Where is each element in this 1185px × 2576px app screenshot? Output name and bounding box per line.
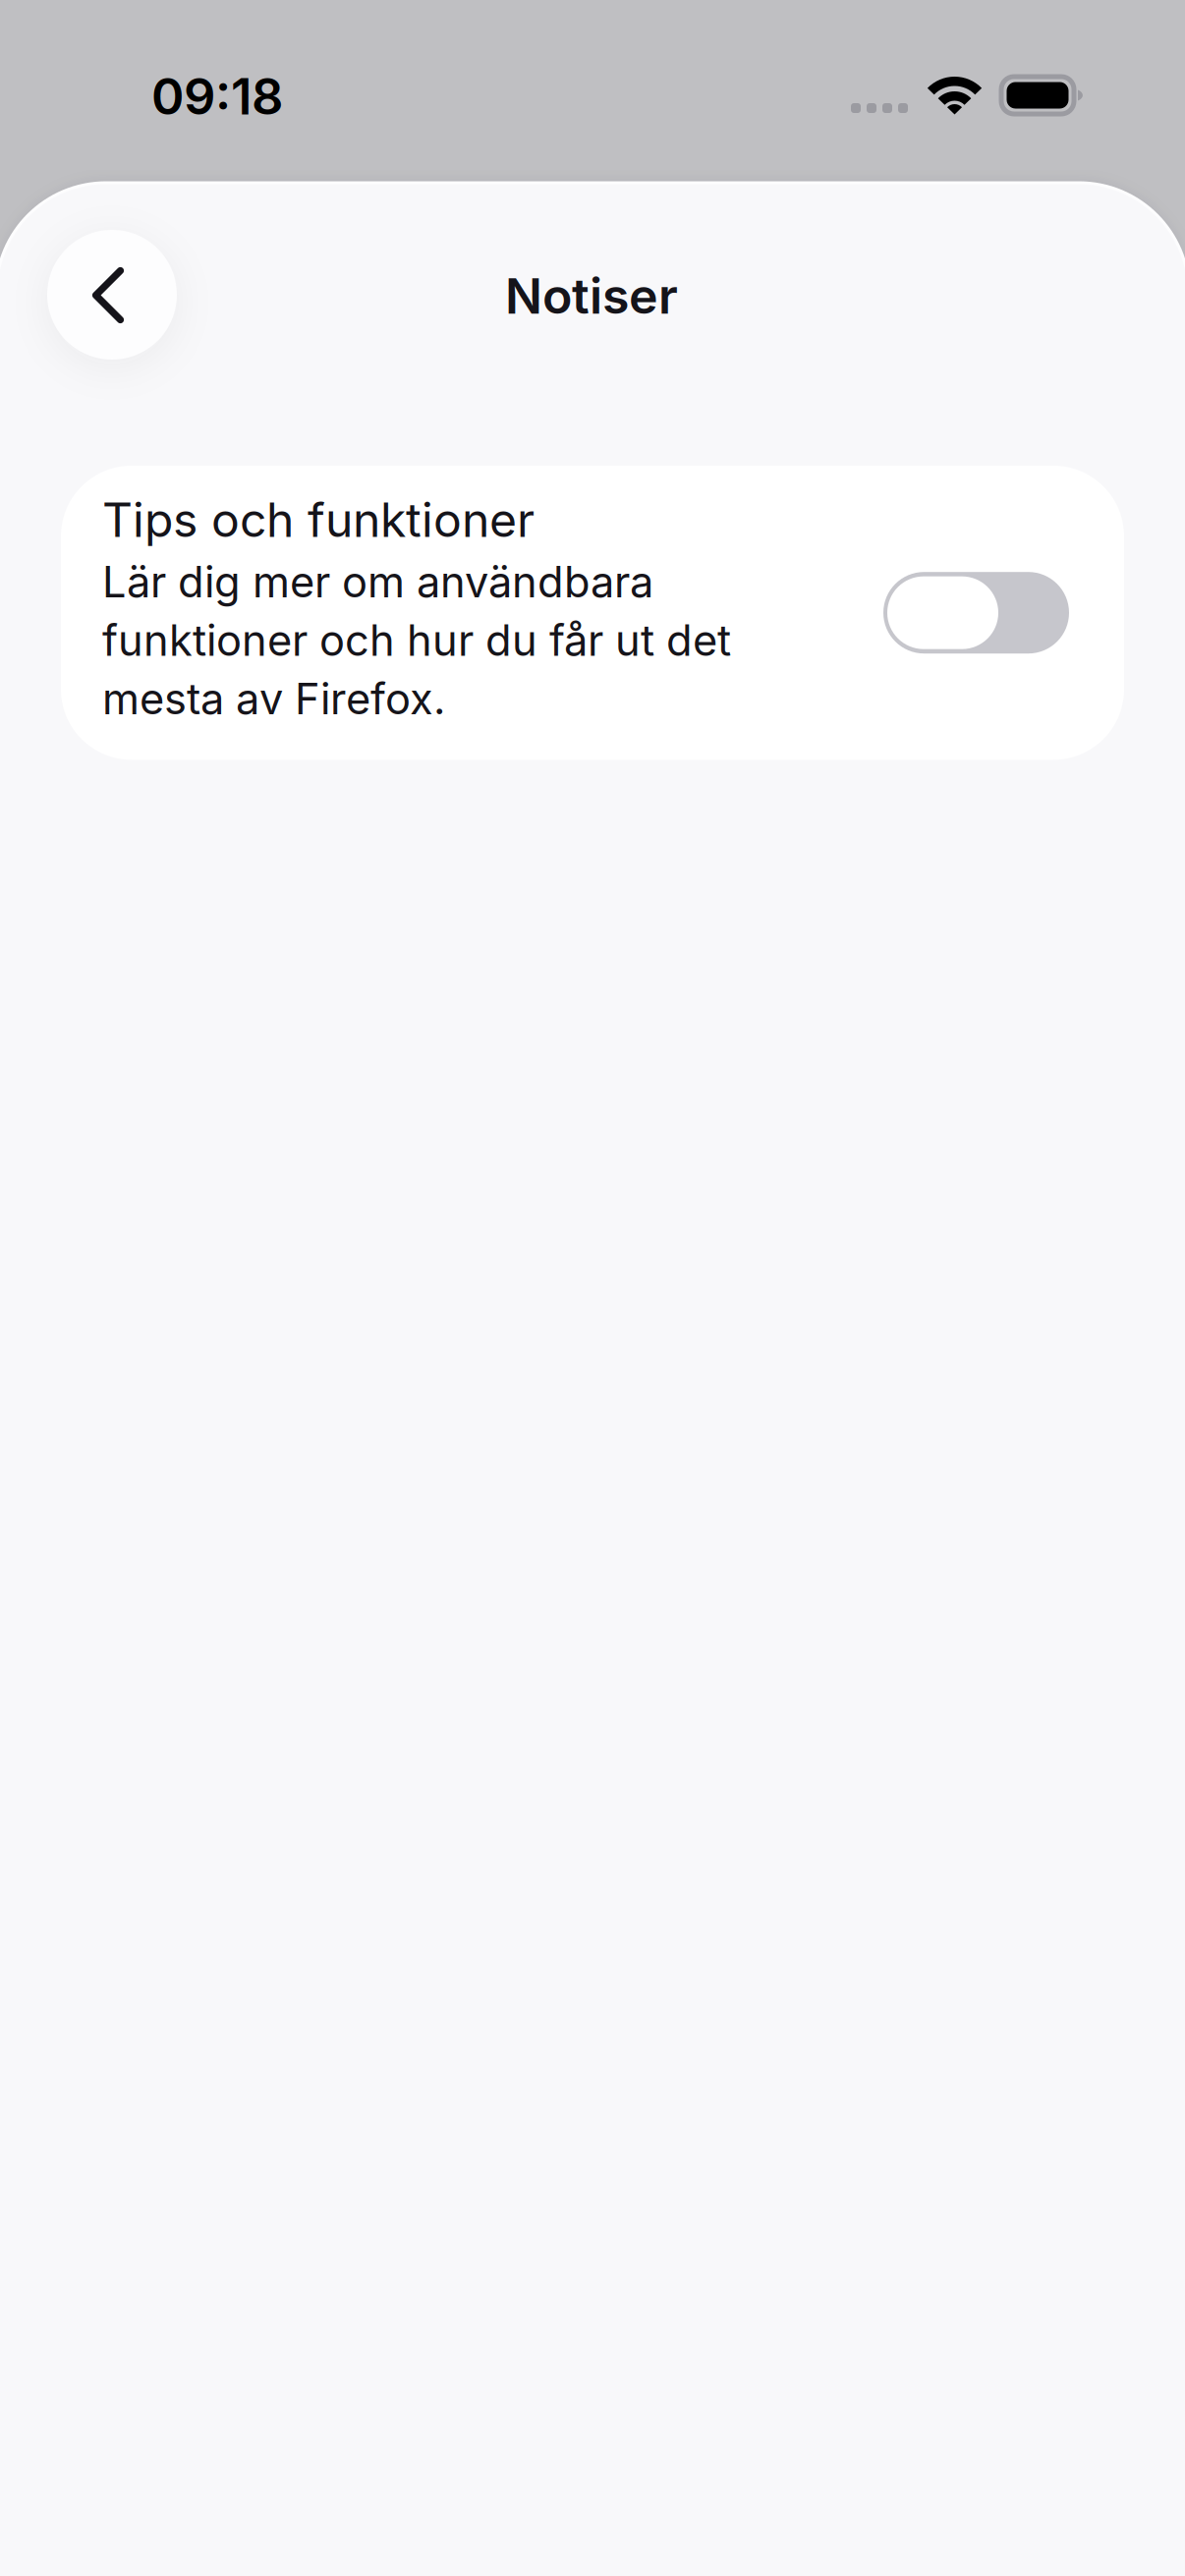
staticText: 09:18 <box>151 66 283 126</box>
staticText: Notiser <box>505 266 678 325</box>
button[interactable]: Tillbaka <box>47 230 177 360</box>
button[interactable]: Tips och funktioner <box>61 466 1124 760</box>
staticText: Lär dig mer om användbara funktioner och… <box>102 556 731 724</box>
staticText: Tips och funktioner <box>102 491 535 548</box>
